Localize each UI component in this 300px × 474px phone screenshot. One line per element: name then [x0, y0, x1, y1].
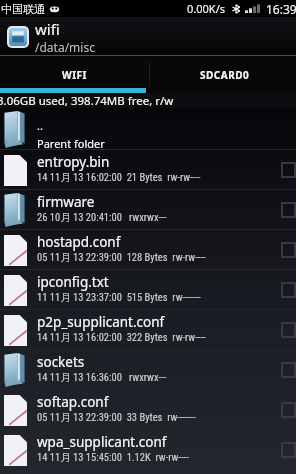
button[interactable]: Select ipconfig.txt [277, 270, 300, 310]
staticText: 05 11月 13 22:39:00 128 Bytes rw-rw---- [37, 251, 206, 264]
staticText: /data/misc [35, 39, 95, 55]
staticText: 14 11月 13 16:36:00 rwxrwx--- [37, 371, 167, 384]
button[interactable]: firmware [0, 190, 300, 230]
staticText: wpa_supplicant.conf [37, 433, 167, 451]
staticText: ipconfig.txt [37, 273, 109, 291]
button[interactable]: Select softap.conf [277, 390, 300, 430]
button[interactable]: Select entropy.bin [277, 150, 300, 190]
staticText: entropy.bin [37, 153, 110, 171]
button[interactable]: SDCARD0 [150, 56, 300, 93]
staticText: 05 11月 13 22:39:00 33 Bytes rw------- [37, 411, 196, 424]
staticText: 0.00K/s [187, 1, 225, 16]
staticText: 14 11月 13 16:02:00 322 Bytes rw-rw---- [37, 331, 206, 344]
button[interactable]: Select p2p_supplicant.conf [277, 310, 300, 350]
staticText: wifi [35, 19, 60, 39]
staticText: 14 11月 13 15:45:00 1.12K rw-rw---- [37, 451, 189, 464]
staticText: hostapd.conf [37, 233, 121, 251]
staticText: Parent folder [37, 136, 105, 150]
staticText: 16:39 [266, 1, 297, 17]
button[interactable]: hostapd.conf [0, 230, 300, 270]
button[interactable]: Select wpa_supplicant.conf [277, 430, 300, 470]
staticText: .. [37, 118, 43, 133]
staticText: sockets [37, 353, 85, 371]
button[interactable]: ipconfig.txt [0, 270, 300, 310]
staticText: 11 11月 13 23:37:00 515 Bytes rw------- [37, 291, 201, 304]
staticText: 14 11月 13 16:02:00 21 Bytes rw-rw---- [37, 171, 201, 184]
staticText: SDCARD0 [200, 68, 250, 82]
staticText: 中国联通 [1, 2, 45, 16]
staticText: p2p_supplicant.conf [37, 313, 165, 331]
staticText: 26 10月 13 20:41:00 rwxrwx--- [37, 211, 167, 224]
button[interactable]: WIFI [0, 56, 149, 93]
button[interactable]: Select firmware [277, 190, 300, 230]
button[interactable]: entropy.bin [0, 150, 300, 190]
staticText: firmware [37, 193, 95, 211]
button[interactable]: Select sockets [277, 350, 300, 390]
staticText: WIFI [62, 68, 87, 82]
staticText: softap.conf [37, 393, 109, 411]
button[interactable]: Select hostapd.conf [277, 230, 300, 270]
button[interactable]: wpa_supplicant.conf [0, 430, 300, 470]
staticText: 3.06GB used, 398.74MB free, r/w [0, 93, 174, 108]
button[interactable]: p2p_supplicant.conf [0, 310, 300, 350]
button[interactable]: sockets [0, 350, 300, 390]
button[interactable]: softap.conf [0, 390, 300, 430]
button[interactable]: .. [0, 108, 300, 150]
